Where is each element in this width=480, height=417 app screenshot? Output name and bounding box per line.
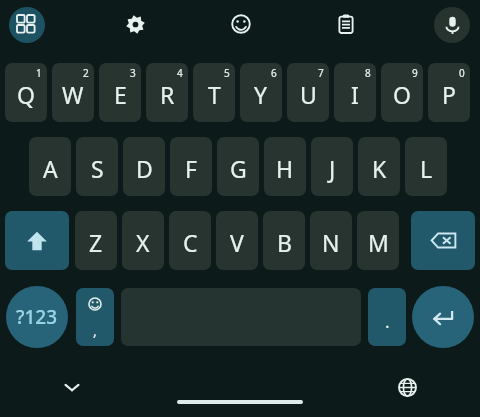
- button[interactable]: Hide keyboard: [54, 370, 90, 404]
- button[interactable]: F: [170, 137, 212, 196]
- button[interactable]: R: [146, 63, 188, 122]
- button[interactable]: Voice input: [434, 7, 470, 43]
- staticText: A: [43, 153, 58, 184]
- button[interactable]: K: [358, 137, 400, 196]
- staticText: 7: [318, 66, 324, 80]
- staticText: E: [114, 79, 127, 110]
- button[interactable]: Emoji and comma: [76, 288, 114, 346]
- staticText: 0: [459, 66, 465, 80]
- staticText: X: [136, 227, 150, 258]
- staticText: U: [300, 79, 317, 110]
- button[interactable]: J: [311, 137, 353, 196]
- button[interactable]: A: [29, 137, 71, 196]
- staticText: C: [183, 227, 198, 258]
- button[interactable]: Period: [368, 288, 406, 346]
- staticText: P: [442, 79, 456, 110]
- staticText: 5: [224, 66, 230, 80]
- staticText: 4: [177, 66, 183, 80]
- button[interactable]: Settings: [118, 7, 152, 41]
- staticText: Z: [89, 227, 103, 258]
- staticText: 1: [36, 66, 42, 80]
- button[interactable]: Emoji: [224, 7, 258, 41]
- button[interactable]: Y: [240, 63, 282, 122]
- button[interactable]: ?123: [6, 286, 68, 348]
- button[interactable]: I: [334, 63, 376, 122]
- staticText: I: [351, 79, 359, 110]
- button[interactable]: O: [381, 63, 423, 122]
- staticText: F: [185, 153, 197, 184]
- button[interactable]: L: [405, 137, 447, 196]
- button[interactable]: Enter: [412, 286, 474, 348]
- button[interactable]: Clipboard: [329, 6, 363, 42]
- button[interactable]: V: [216, 211, 258, 270]
- button[interactable]: N: [310, 211, 352, 270]
- staticText: R: [160, 79, 175, 110]
- staticText: K: [372, 153, 387, 184]
- button[interactable]: H: [264, 137, 306, 196]
- button[interactable]: Change language: [390, 370, 424, 404]
- staticText: B: [277, 227, 292, 258]
- button[interactable]: X: [122, 211, 164, 270]
- button[interactable]: W: [52, 63, 94, 122]
- staticText: W: [62, 79, 84, 110]
- button[interactable]: Toolbar: [9, 7, 45, 43]
- button[interactable]: S: [76, 137, 118, 196]
- button[interactable]: G: [217, 137, 259, 196]
- staticText: .: [385, 310, 390, 333]
- staticText: D: [136, 153, 153, 184]
- staticText: V: [230, 227, 244, 258]
- button[interactable]: B: [263, 211, 305, 270]
- button[interactable]: P: [428, 63, 470, 122]
- staticText: 9: [412, 66, 418, 80]
- button[interactable]: T: [193, 63, 235, 122]
- button[interactable]: Z: [75, 211, 117, 270]
- staticText: ?123: [16, 304, 58, 330]
- button[interactable]: Shift: [5, 211, 69, 270]
- staticText: 2: [83, 66, 89, 80]
- staticText: L: [420, 153, 433, 184]
- button[interactable]: Q: [5, 63, 47, 122]
- button[interactable]: D: [123, 137, 165, 196]
- staticText: G: [230, 153, 247, 184]
- staticText: ,: [93, 321, 97, 340]
- staticText: N: [322, 227, 340, 258]
- button[interactable]: C: [169, 211, 211, 270]
- button[interactable]: E: [99, 63, 141, 122]
- staticText: T: [208, 79, 221, 110]
- button[interactable]: U: [287, 63, 329, 122]
- staticText: J: [329, 153, 336, 184]
- button[interactable]: M: [357, 211, 399, 270]
- staticText: S: [91, 153, 104, 184]
- button[interactable]: Backspace: [411, 211, 475, 270]
- staticText: 3: [130, 66, 136, 80]
- staticText: Y: [254, 79, 268, 110]
- staticText: M: [368, 227, 389, 258]
- staticText: 8: [365, 66, 371, 80]
- staticText: 6: [271, 66, 277, 80]
- staticText: H: [276, 153, 294, 184]
- staticText: O: [393, 79, 411, 110]
- staticText: Q: [17, 79, 35, 110]
